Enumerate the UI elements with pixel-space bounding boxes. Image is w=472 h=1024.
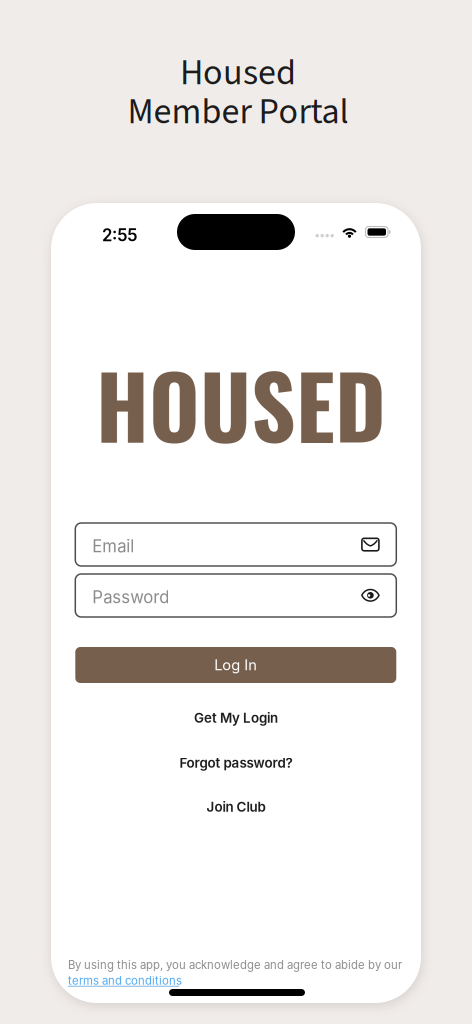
staticText: Join Club — [206, 799, 265, 815]
staticText: Get My Login — [194, 710, 278, 726]
staticText: HOUSED — [96, 339, 386, 467]
staticText: By using this app, you acknowledge and a… — [68, 958, 402, 972]
button[interactable]: Log In — [75, 647, 396, 683]
staticText: Email — [92, 536, 134, 556]
staticText: Member Portal — [127, 86, 348, 138]
staticText: terms and conditions — [68, 974, 182, 988]
staticText: Password — [92, 587, 169, 607]
button[interactable]: Get My Login — [51, 706, 421, 730]
staticText: Log In — [214, 656, 257, 674]
button[interactable]: Forgot password? — [51, 751, 421, 775]
staticText: Housed — [180, 47, 296, 99]
button[interactable]: Join Club — [51, 795, 421, 819]
staticText: Forgot password? — [179, 755, 292, 771]
staticText: 2:55 — [102, 225, 137, 245]
